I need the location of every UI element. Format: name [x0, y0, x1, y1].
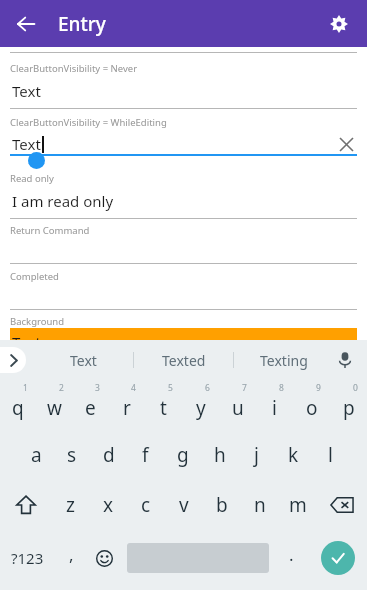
staticText: p: [343, 395, 355, 421]
staticText: Completed: [10, 270, 59, 283]
button[interactable]: a: [18, 430, 54, 480]
button[interactable]: Clear text: [333, 131, 359, 157]
staticText: q: [12, 395, 24, 421]
staticText: d: [103, 442, 115, 468]
staticText: h: [214, 442, 226, 468]
button[interactable]: Shift: [0, 480, 51, 530]
button[interactable]: [0, 237, 367, 264]
button[interactable]: Texted: [134, 340, 233, 380]
staticText: 1: [23, 382, 28, 394]
button[interactable]: ,: [55, 530, 88, 586]
button[interactable]: ?123: [0, 530, 55, 586]
button[interactable]: z: [51, 480, 89, 530]
button[interactable]: t: [145, 380, 182, 430]
staticText: o: [306, 395, 318, 421]
button[interactable]: x: [89, 480, 127, 530]
staticText: k: [288, 442, 299, 468]
staticText: z: [66, 492, 75, 518]
staticText: r: [123, 395, 131, 421]
button[interactable]: f: [127, 430, 164, 480]
staticText: c: [141, 492, 151, 518]
staticText: 5: [168, 382, 173, 394]
button[interactable]: c: [127, 480, 165, 530]
button[interactable]: i: [256, 380, 293, 430]
button[interactable]: w: [36, 380, 72, 430]
button[interactable]: Settings: [321, 6, 357, 42]
button[interactable]: j: [238, 430, 275, 480]
staticText: ?123: [11, 548, 44, 568]
button[interactable]: k: [275, 430, 312, 480]
button[interactable]: n: [241, 480, 279, 530]
staticText: s: [67, 442, 77, 468]
staticText: Return Command: [10, 224, 90, 237]
staticText: Entry: [58, 11, 106, 37]
staticText: ClearButtonVisibility = Never: [10, 62, 138, 75]
button[interactable]: d: [90, 430, 127, 480]
staticText: u: [232, 395, 244, 421]
staticText: Background: [10, 315, 65, 328]
staticText: Read only: [10, 172, 54, 185]
staticText: Text: [12, 134, 41, 154]
staticText: I am read only: [12, 191, 114, 211]
button[interactable]: Text: [34, 340, 133, 380]
staticText: 7: [242, 382, 247, 394]
staticText: 8: [279, 382, 284, 394]
button[interactable]: p: [330, 380, 367, 430]
staticText: Text: [12, 81, 41, 101]
button[interactable]: Texting: [234, 340, 333, 380]
staticText: f: [142, 442, 149, 468]
button[interactable]: Enter: [321, 541, 355, 575]
button[interactable]: u: [219, 380, 256, 430]
staticText: w: [47, 395, 62, 421]
staticText: 9: [316, 382, 321, 394]
staticText: Text: [70, 351, 97, 370]
button[interactable]: .: [275, 530, 308, 586]
button[interactable]: Back: [8, 6, 44, 42]
staticText: 3: [95, 382, 100, 394]
staticText: n: [254, 492, 266, 518]
staticText: v: [179, 492, 189, 518]
staticText: y: [196, 395, 206, 421]
staticText: g: [177, 442, 189, 468]
button[interactable]: r: [108, 380, 145, 430]
staticText: 2: [59, 382, 64, 394]
staticText: Texting: [260, 351, 308, 370]
button[interactable]: y: [182, 380, 219, 430]
button[interactable]: Text: [0, 129, 367, 169]
button[interactable]: Text: [0, 75, 367, 109]
button[interactable]: Emoji: [88, 530, 121, 586]
button[interactable]: s: [54, 430, 90, 480]
staticText: a: [31, 442, 42, 468]
button[interactable]: I am read only: [0, 185, 367, 219]
staticText: e: [85, 395, 96, 421]
staticText: Text: [12, 332, 41, 352]
staticText: 4: [131, 382, 136, 394]
staticText: t: [160, 395, 167, 421]
staticText: Texted: [162, 351, 206, 370]
button[interactable]: m: [279, 480, 317, 530]
staticText: .: [289, 543, 294, 566]
staticText: i: [272, 395, 277, 421]
staticText: 0: [353, 382, 358, 394]
staticText: ClearButtonVisibility = WhileEditing: [10, 116, 167, 129]
staticText: j: [254, 442, 259, 468]
button[interactable]: Voice input: [331, 346, 359, 374]
button[interactable]: g: [164, 430, 201, 480]
button[interactable]: Expand toolbar: [0, 347, 26, 373]
button[interactable]: [0, 283, 367, 310]
staticText: b: [216, 492, 228, 518]
staticText: l: [328, 442, 333, 468]
staticText: m: [289, 492, 307, 518]
button[interactable]: Backspace: [317, 480, 367, 530]
staticText: ,: [69, 543, 74, 566]
button[interactable]: l: [312, 430, 349, 480]
button[interactable]: h: [201, 430, 238, 480]
button[interactable]: e: [72, 380, 108, 430]
button[interactable]: q: [0, 380, 36, 430]
staticText: 6: [205, 382, 210, 394]
button[interactable]: v: [165, 480, 203, 530]
button[interactable]: o: [293, 380, 330, 430]
button[interactable]: Text: [10, 328, 357, 356]
button[interactable]: b: [203, 480, 241, 530]
